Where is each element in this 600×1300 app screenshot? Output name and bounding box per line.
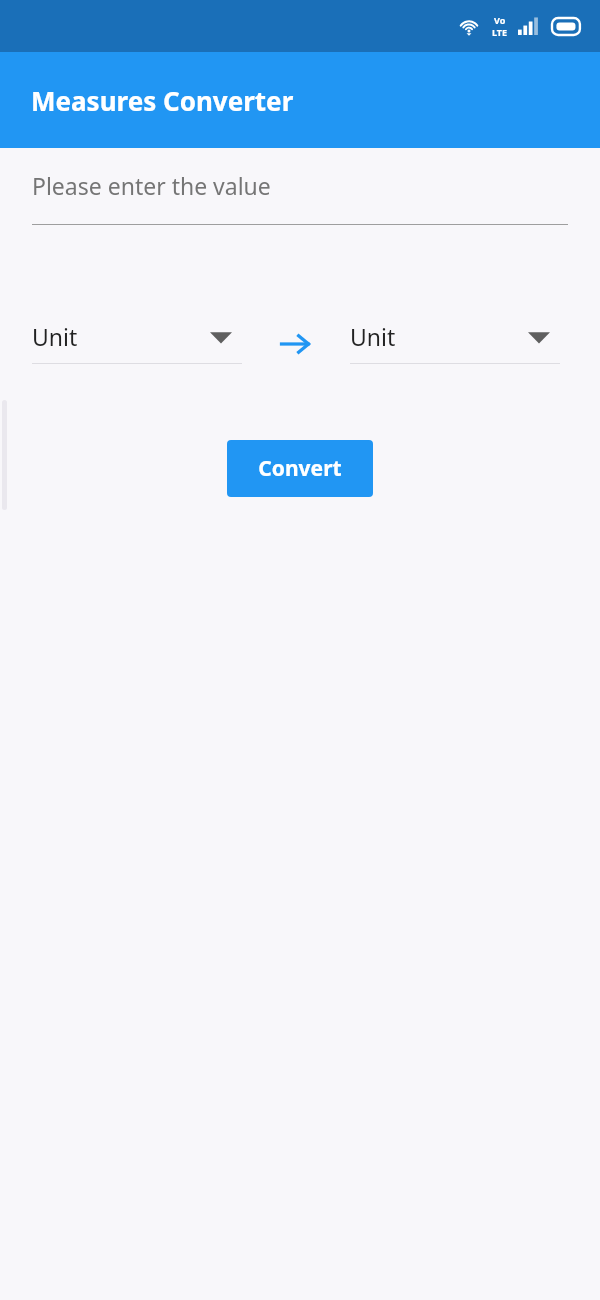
button[interactable]: Please enter the value	[32, 170, 568, 225]
button[interactable]: Convert	[227, 440, 373, 497]
staticText: Vo	[494, 14, 506, 26]
staticText: Unit	[350, 321, 396, 352]
staticText: LTE	[492, 26, 508, 38]
staticText: Convert	[258, 454, 342, 483]
button[interactable]: Convert direction	[278, 327, 312, 361]
button[interactable]: Unit	[350, 321, 560, 364]
staticText: Measures Converter	[31, 83, 294, 118]
staticText: Unit	[32, 321, 78, 352]
staticText: Please enter the value	[32, 170, 271, 201]
button[interactable]: Unit	[32, 321, 242, 364]
